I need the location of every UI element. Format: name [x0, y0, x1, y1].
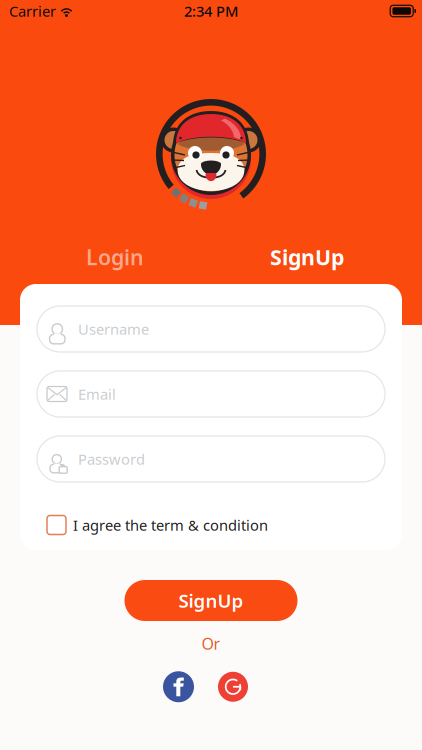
button[interactable]: Login — [19, 243, 211, 271]
staticText: Password — [78, 449, 145, 469]
staticText: Username — [78, 319, 149, 339]
staticText: Email — [78, 384, 116, 404]
button[interactable]: SignUp — [211, 243, 403, 271]
staticText: Carrier — [9, 1, 56, 21]
staticText: SignUp — [178, 588, 243, 613]
staticText: 2:34 PM — [184, 1, 238, 21]
button[interactable]: Sign up with Facebook — [163, 671, 194, 702]
button[interactable]: Sign up with Google — [218, 672, 248, 702]
staticText: Or — [201, 633, 220, 654]
staticText: I agree the term & condition — [73, 515, 268, 535]
staticText: SignUp — [270, 243, 344, 271]
button[interactable]: I agree the term & condition — [37, 514, 385, 536]
button[interactable]: SignUp — [124, 580, 297, 621]
staticText: Login — [86, 243, 144, 271]
